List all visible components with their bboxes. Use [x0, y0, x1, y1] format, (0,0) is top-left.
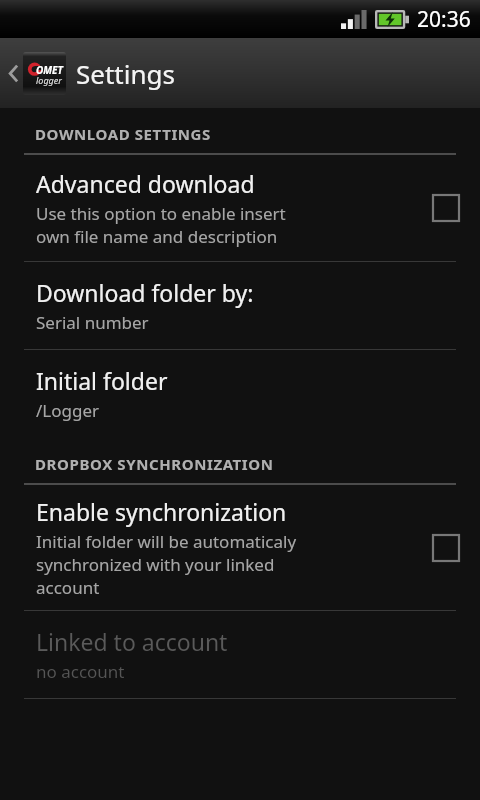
- staticText: DOWNLOAD SETTINGS: [35, 124, 211, 144]
- staticText: Initial folder will be automaticaly: [36, 530, 297, 553]
- button[interactable]: Download folder by:: [0, 262, 480, 349]
- button[interactable]: Enable synchronization checkbox: [433, 535, 459, 561]
- staticText: OMET: [36, 63, 63, 77]
- staticText: own file name and description: [36, 225, 278, 248]
- staticText: Initial folder: [36, 365, 168, 396]
- staticText: Use this option to enable insert: [36, 202, 286, 225]
- staticText: Linked to account: [36, 626, 228, 657]
- staticText: Download folder by:: [36, 277, 254, 308]
- staticText: Advanced download: [36, 168, 255, 199]
- staticText: synchronized with your linked: [36, 553, 275, 576]
- button[interactable]: Enable synchronization: [0, 485, 480, 610]
- button[interactable]: Advanced download checkbox: [433, 195, 459, 221]
- staticText: Settings: [76, 56, 175, 91]
- staticText: 20:36: [417, 5, 471, 34]
- staticText: account: [36, 576, 100, 599]
- button[interactable]: Advanced download: [0, 155, 480, 261]
- button[interactable]: Linked to account: [0, 611, 480, 698]
- staticText: no account: [36, 660, 125, 683]
- button[interactable]: Initial folder: [0, 350, 480, 437]
- button[interactable]: Navigate up: [0, 38, 480, 108]
- staticText: Serial number: [36, 311, 149, 334]
- staticText: logger: [36, 74, 62, 86]
- staticText: Enable synchronization: [36, 496, 287, 527]
- staticText: DROPBOX SYNCHRONIZATION: [35, 454, 274, 474]
- staticText: /Logger: [36, 399, 100, 422]
